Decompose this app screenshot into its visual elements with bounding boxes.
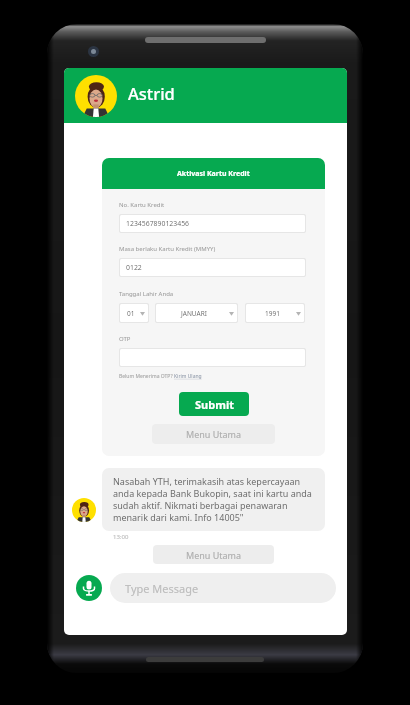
button[interactable]: Menu Utama	[153, 545, 274, 564]
staticText: Nasabah YTH, terimakasih atas kepercayaa…	[113, 475, 316, 523]
button[interactable]: Submit	[179, 392, 249, 416]
staticText: Astrid	[128, 82, 175, 104]
button[interactable]: Nasabah YTH, terimakasih atas kepercayaa…	[102, 468, 325, 531]
button[interactable]: Type Message	[110, 573, 336, 603]
staticText: Belum Menerima OTP?	[119, 373, 174, 380]
staticText: Submit	[195, 397, 234, 412]
staticText: 0122	[126, 263, 142, 272]
staticText: 13:00	[113, 533, 129, 541]
staticText: Aktivasi Kartu Kredit	[177, 169, 250, 179]
staticText: Menu Utama	[186, 549, 242, 561]
button[interactable]: Menu Utama	[152, 424, 275, 444]
staticText: 1991	[265, 309, 280, 318]
button[interactable]: 0122	[120, 259, 305, 276]
staticText: OTP	[119, 335, 131, 343]
button[interactable]: 1991	[246, 304, 304, 322]
button[interactable]: 01	[120, 304, 148, 322]
staticText: Masa berlaku Kartu Kredit (MMYY)	[119, 245, 216, 253]
staticText: 01	[127, 309, 135, 318]
staticText: No. Kartu Kredit	[119, 201, 165, 209]
button[interactable]: 1234567890123456	[120, 215, 305, 232]
button[interactable]: Astrid	[64, 68, 347, 123]
staticText: JANUARI	[181, 309, 207, 318]
button[interactable]: Kirim Ulang	[174, 373, 202, 380]
staticText: Type Message	[125, 581, 199, 596]
staticText: Tanggal Lahir Anda	[119, 290, 174, 298]
button[interactable]: Record voice message	[76, 575, 102, 601]
button[interactable]: JANUARI	[156, 304, 237, 322]
staticText: Menu Utama	[186, 428, 242, 440]
staticText: 1234567890123456	[126, 219, 190, 228]
